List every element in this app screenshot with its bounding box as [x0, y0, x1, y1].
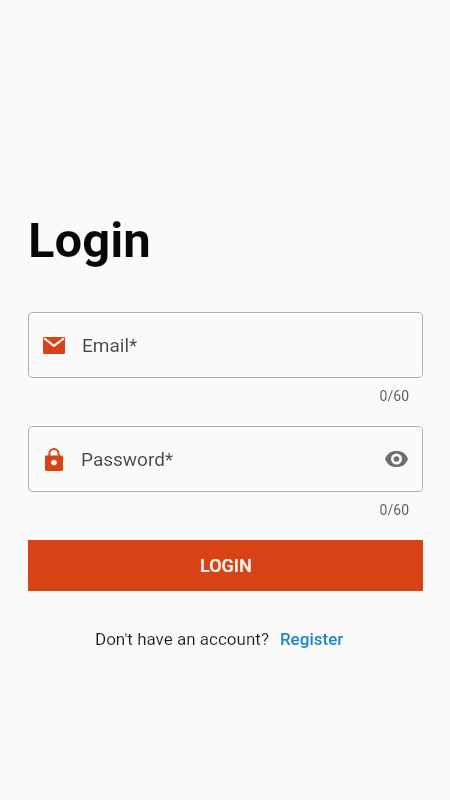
button[interactable]: Show password	[381, 444, 411, 474]
button[interactable]: Email*	[28, 312, 423, 378]
button[interactable]: LOGIN	[28, 540, 423, 591]
staticText: Password*	[81, 448, 174, 470]
staticText: LOGIN	[200, 555, 252, 576]
staticText: Don't have an account?	[95, 629, 269, 649]
staticText: 0/60	[0, 502, 409, 518]
staticText: 0/60	[0, 388, 409, 404]
staticText: Register	[280, 629, 344, 649]
staticText: Email*	[82, 334, 138, 356]
staticText: Login	[28, 212, 151, 269]
button[interactable]: Password*	[28, 426, 423, 492]
button[interactable]: Register	[280, 629, 355, 649]
